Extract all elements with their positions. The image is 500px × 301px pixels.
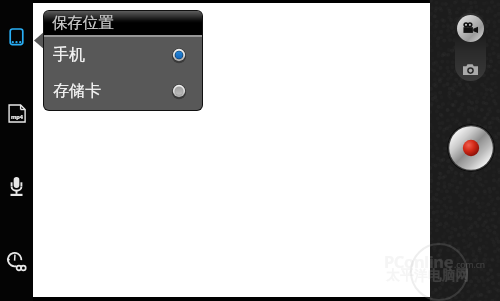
staticText: PConline (384, 250, 454, 272)
button[interactable]: Switch between video and photo mode (455, 13, 486, 81)
button[interactable]: 手机 (44, 37, 202, 73)
button[interactable]: Start recording (447, 124, 495, 172)
staticText: 手机 (53, 45, 172, 65)
button[interactable]: Microphone on (9, 176, 24, 197)
other: Photo mode (463, 64, 478, 75)
staticText: mp4 (11, 113, 23, 121)
staticText: .com.cn (454, 259, 486, 271)
staticText: 存储卡 (53, 81, 172, 101)
button[interactable]: File format mp4 (8, 104, 26, 123)
staticText: 太平洋电脑网 (386, 267, 470, 284)
button[interactable]: Recording time unlimited (7, 252, 26, 273)
button[interactable]: 存储卡 (44, 73, 202, 109)
button[interactable]: Storage location: phone (8, 27, 25, 47)
staticText: 保存位置 (52, 13, 114, 33)
